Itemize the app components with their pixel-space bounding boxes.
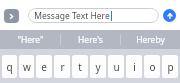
button[interactable]: t xyxy=(72,55,88,78)
button[interactable]: Hereby xyxy=(121,30,180,49)
staticText: Hereby xyxy=(136,34,165,46)
staticText: Here's xyxy=(78,34,103,46)
staticText: w xyxy=(23,60,31,74)
button[interactable]: Here's xyxy=(61,30,120,49)
staticText: o xyxy=(149,60,156,74)
staticText: "Here" xyxy=(17,34,44,46)
staticText: r xyxy=(60,60,65,74)
button[interactable]: w xyxy=(19,55,34,78)
button[interactable]: o xyxy=(144,55,160,78)
button[interactable]: "Here" xyxy=(0,30,60,49)
button[interactable]: Message Text Here xyxy=(28,8,159,23)
staticText: Message Text Here xyxy=(34,10,110,22)
staticText: p xyxy=(167,60,174,74)
button[interactable]: r xyxy=(54,55,70,78)
button[interactable]: y xyxy=(90,55,106,78)
staticText: y xyxy=(95,60,101,74)
staticText: i xyxy=(133,60,136,74)
staticText: e xyxy=(41,60,47,74)
button[interactable]: p xyxy=(162,55,178,78)
button[interactable]: e xyxy=(36,55,52,78)
button[interactable]: i xyxy=(126,55,142,78)
staticText: t xyxy=(78,60,82,74)
button[interactable]: u xyxy=(108,55,124,78)
button[interactable]: q xyxy=(2,55,17,78)
staticText: q xyxy=(6,60,13,74)
staticText: u xyxy=(113,60,120,74)
button[interactable]: Show app drawer xyxy=(4,9,19,23)
button[interactable]: Send xyxy=(163,9,176,22)
